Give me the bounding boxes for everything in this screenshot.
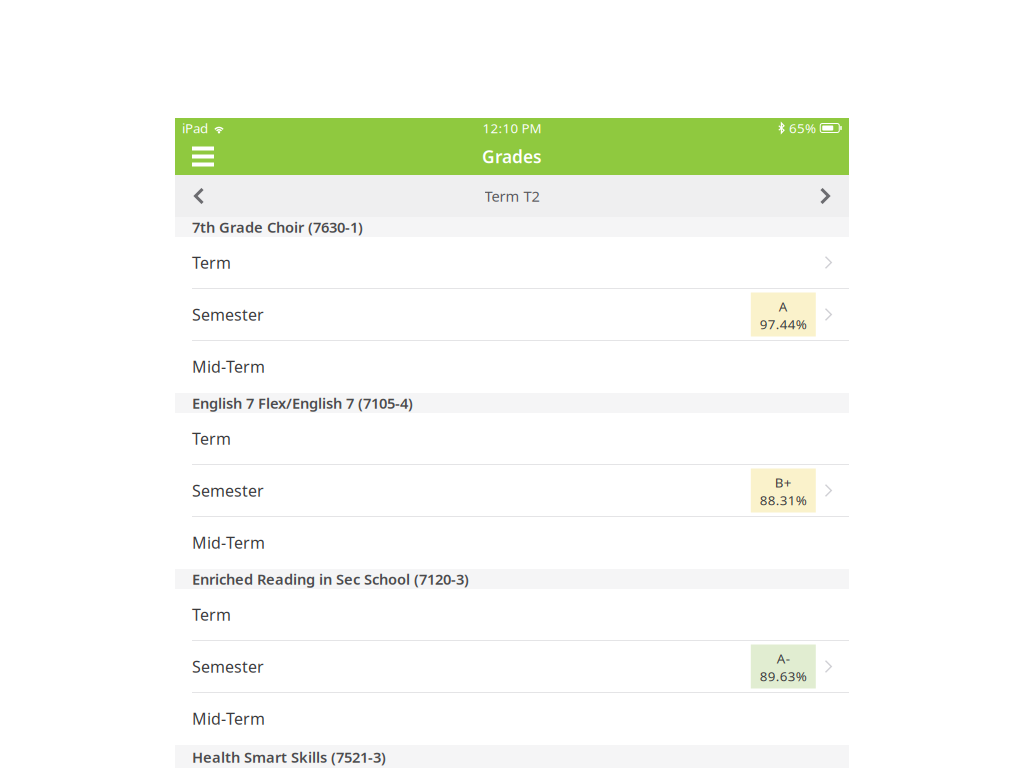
staticText: 97.44% [760, 315, 807, 333]
staticText: Mid-Term [192, 708, 265, 729]
staticText: Grades [482, 145, 542, 168]
button[interactable]: Mid-Term [175, 693, 849, 745]
staticText: Health Smart Skills (7521-3) [192, 747, 386, 767]
button[interactable]: Mid-Term [175, 341, 849, 393]
button[interactable]: Menu [181, 138, 225, 175]
staticText: Term T2 [484, 186, 539, 206]
button[interactable]: Semester [175, 289, 849, 341]
button[interactable]: Previous term [180, 175, 218, 217]
staticText: 12:10 PM [482, 119, 541, 137]
staticText: Term [192, 428, 231, 449]
staticText: Mid-Term [192, 532, 265, 553]
staticText: A [779, 297, 788, 315]
staticText: 89.63% [760, 667, 807, 685]
staticText: 65% [789, 119, 816, 137]
staticText: Semester [192, 304, 264, 325]
staticText: B+ [775, 473, 792, 491]
staticText: English 7 Flex/English 7 (7105-4) [192, 393, 413, 413]
staticText: Semester [192, 480, 264, 501]
staticText: A- [777, 649, 790, 667]
staticText: 88.31% [760, 491, 807, 509]
staticText: 7th Grade Choir (7630-1) [192, 217, 363, 237]
button[interactable]: Semester [175, 465, 849, 517]
button[interactable]: Mid-Term [175, 517, 849, 569]
staticText: iPad [182, 119, 208, 137]
button[interactable]: Term [175, 237, 849, 289]
staticText: Enriched Reading in Sec School (7120-3) [192, 569, 469, 589]
staticText: Semester [192, 656, 264, 677]
button[interactable]: Semester [175, 641, 849, 693]
button[interactable]: Term [175, 413, 849, 465]
button[interactable]: Next term [806, 175, 844, 217]
staticText: Mid-Term [192, 356, 265, 377]
staticText: Term [192, 604, 231, 625]
staticText: Term [192, 252, 231, 273]
button[interactable]: Term [175, 589, 849, 641]
